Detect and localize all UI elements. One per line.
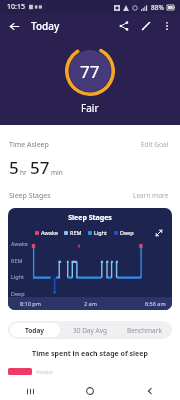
staticText: Today: [25, 326, 45, 335]
button[interactable]: Recents: [0, 382, 60, 400]
staticText: Awake: [11, 240, 28, 247]
button[interactable]: Edit: [135, 15, 157, 37]
staticText: Light: [94, 229, 108, 236]
button[interactable]: Home: [60, 382, 120, 400]
button[interactable]: Back: [3, 15, 25, 37]
staticText: REM: [11, 257, 23, 264]
button[interactable]: Edit Goal: [139, 138, 171, 151]
staticText: 77: [80, 60, 100, 83]
staticText: Time Asleep: [9, 140, 49, 150]
staticText: 5: [9, 156, 19, 179]
staticText: Time spent in each stage of sleep: [0, 349, 180, 359]
button[interactable]: Expand chart: [153, 227, 164, 238]
staticText: 57: [30, 156, 50, 179]
staticText: Benchmark: [127, 326, 162, 335]
staticText: hr: [20, 168, 27, 177]
staticText: Deep: [120, 229, 134, 236]
staticText: min: [51, 168, 63, 177]
staticText: Today: [31, 19, 60, 33]
button[interactable]: Sleep Stages: [8, 208, 172, 310]
staticText: 88%: [151, 3, 164, 12]
staticText: 10:15: [7, 2, 25, 12]
staticText: 30 Day Avg: [73, 326, 107, 335]
button[interactable]: Learn more: [131, 189, 171, 202]
button[interactable]: Today: [10, 323, 60, 337]
staticText: Awake: [41, 229, 58, 236]
staticText: Learn more: [133, 191, 169, 200]
staticText: Fair: [81, 101, 99, 115]
button[interactable]: Back: [120, 382, 180, 400]
button[interactable]: Share: [113, 15, 135, 37]
button[interactable]: Benchmark: [117, 321, 172, 339]
staticText: Sleep Stages: [8, 213, 172, 223]
staticText: 6:56 am: [145, 300, 166, 307]
staticText: Sleep Stages: [9, 191, 51, 201]
staticText: Light: [11, 273, 25, 280]
staticText: REM: [70, 229, 82, 236]
staticText: Awake: [36, 368, 53, 375]
staticText: Deep: [11, 290, 25, 297]
button[interactable]: More options: [157, 16, 177, 36]
staticText: 2 am: [84, 300, 97, 307]
staticText: 8:10 pm: [20, 300, 41, 307]
staticText: Edit Goal: [141, 140, 169, 149]
button[interactable]: 30 Day Avg: [62, 321, 117, 339]
